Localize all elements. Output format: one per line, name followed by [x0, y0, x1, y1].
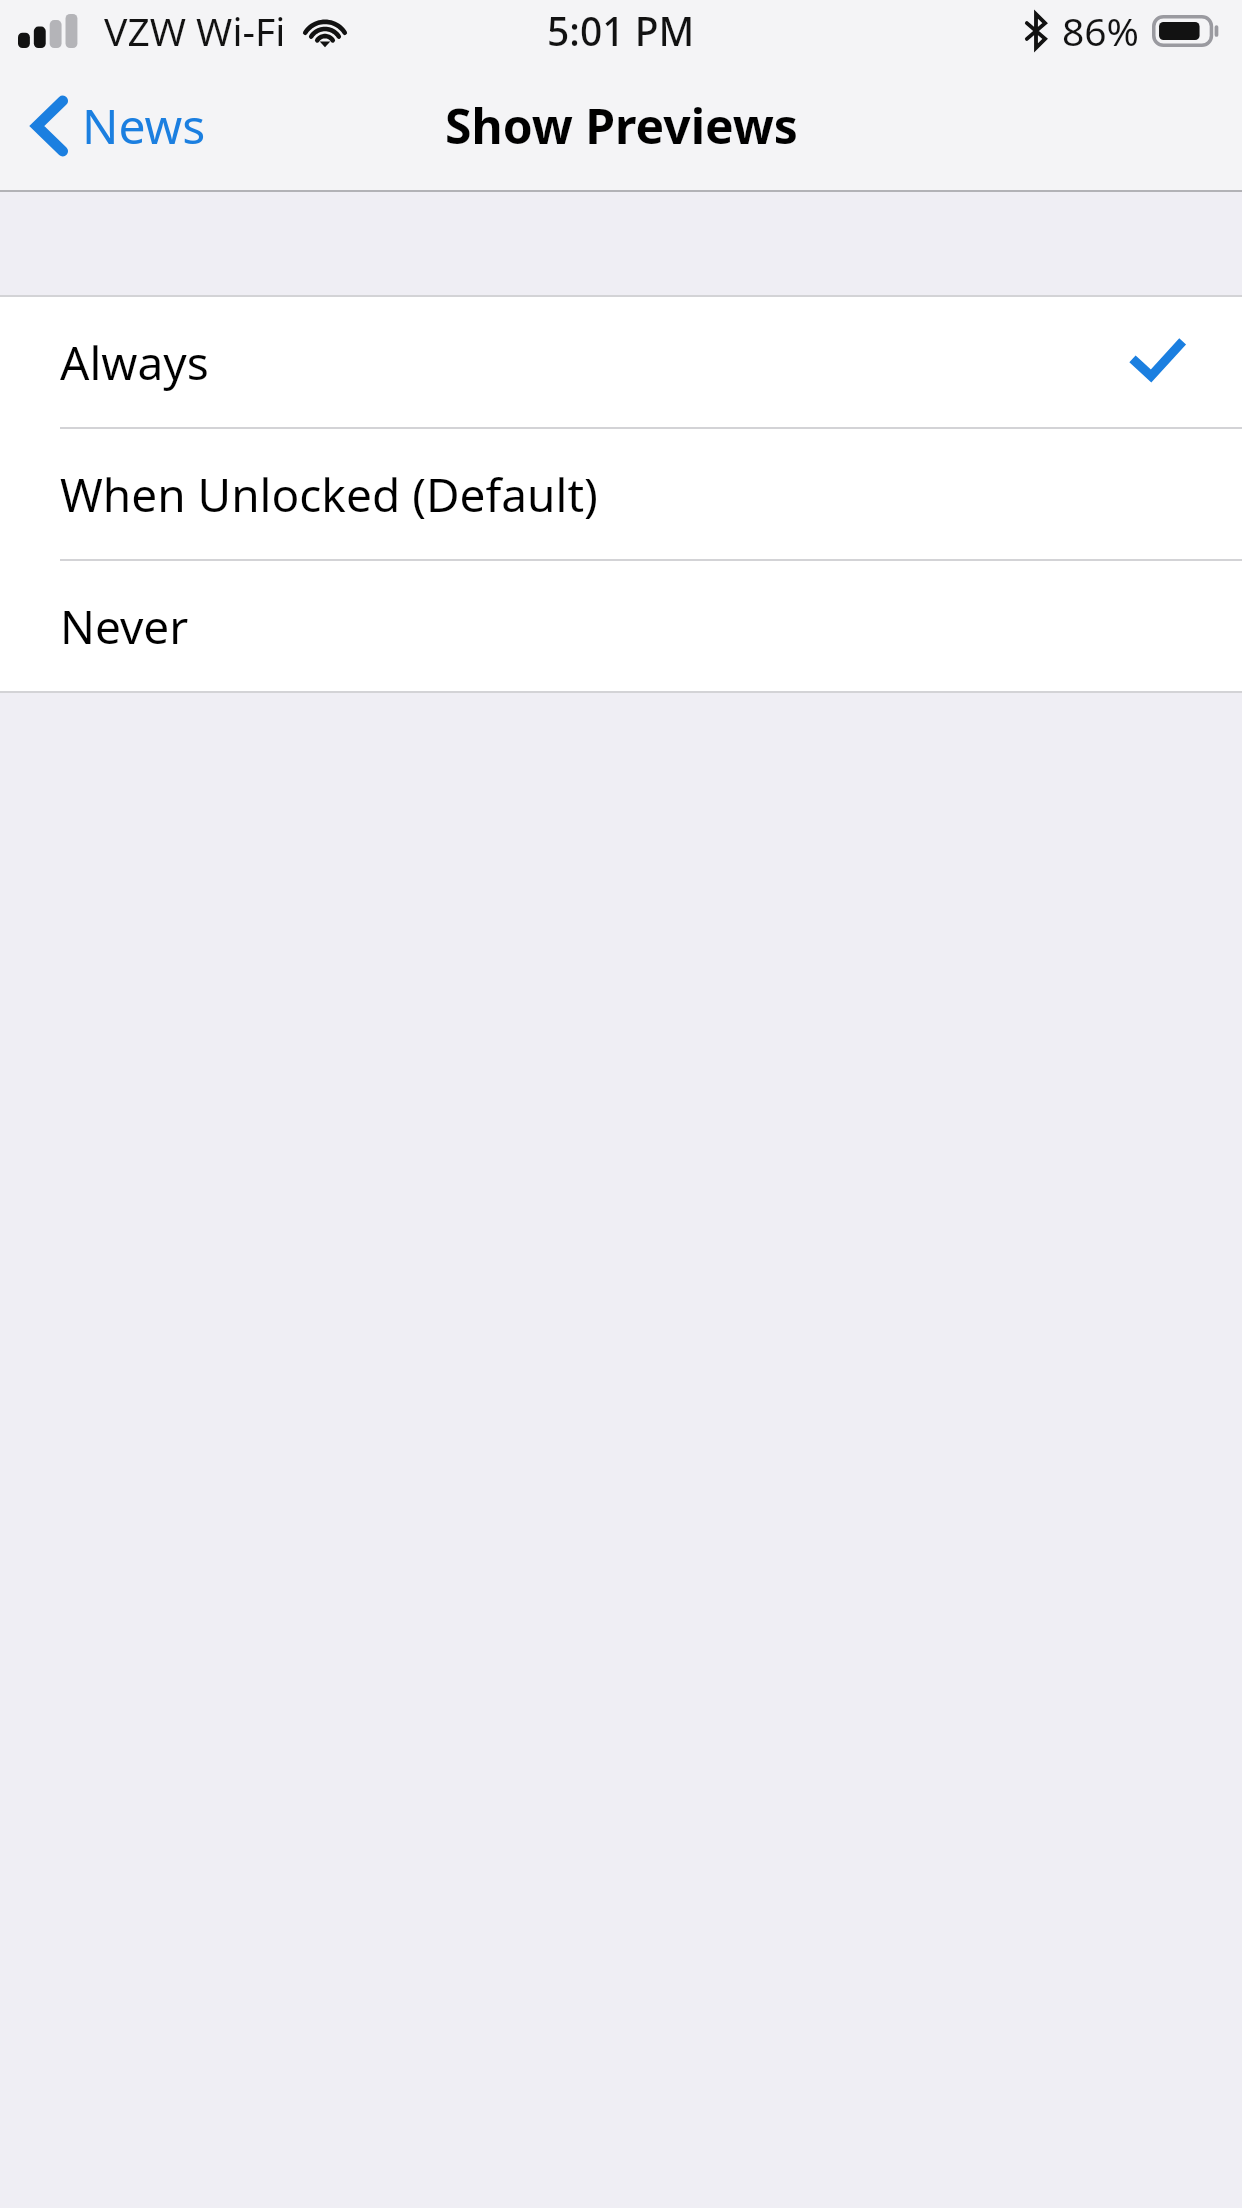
staticText: VZW Wi-Fi [104, 4, 286, 57]
staticText: 5:01 PM [547, 4, 695, 57]
button[interactable]: Never [0, 561, 1242, 691]
staticText: 86% [1062, 4, 1140, 57]
staticText: News [82, 93, 206, 158]
staticText: When Unlocked (Default) [60, 463, 598, 526]
button[interactable]: News [30, 93, 206, 158]
button[interactable]: When Unlocked (Default) [0, 429, 1242, 559]
staticText: Show Previews [445, 93, 798, 158]
button[interactable]: Always [0, 297, 1242, 427]
staticText: Always [60, 331, 209, 394]
staticText: Never [60, 595, 189, 658]
